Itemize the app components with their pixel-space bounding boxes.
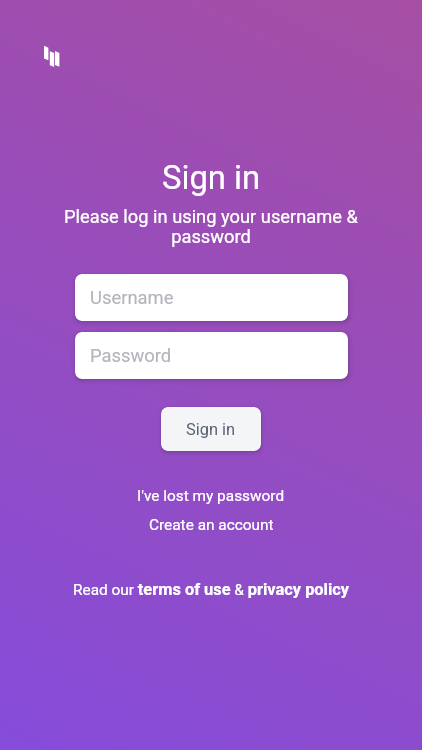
- staticText: Username: [90, 287, 174, 309]
- staticText: I've lost my password: [137, 487, 285, 505]
- button[interactable]: Create an account: [139, 514, 284, 536]
- other: App logo: [44, 45, 62, 68]
- button[interactable]: Password: [75, 332, 348, 379]
- staticText: Sign in: [186, 420, 236, 439]
- button[interactable]: Username: [75, 274, 348, 321]
- button[interactable]: Sign in: [161, 407, 261, 451]
- staticText: Please log in using your username & pass…: [61, 206, 361, 248]
- staticText: Sign in: [162, 159, 261, 197]
- button[interactable]: I've lost my password: [127, 485, 295, 507]
- button[interactable]: Read our terms of use & privacy policy: [63, 578, 360, 601]
- staticText: Create an account: [149, 516, 274, 534]
- staticText: Read our terms of use & privacy policy: [73, 580, 350, 599]
- staticText: Password: [90, 345, 172, 367]
